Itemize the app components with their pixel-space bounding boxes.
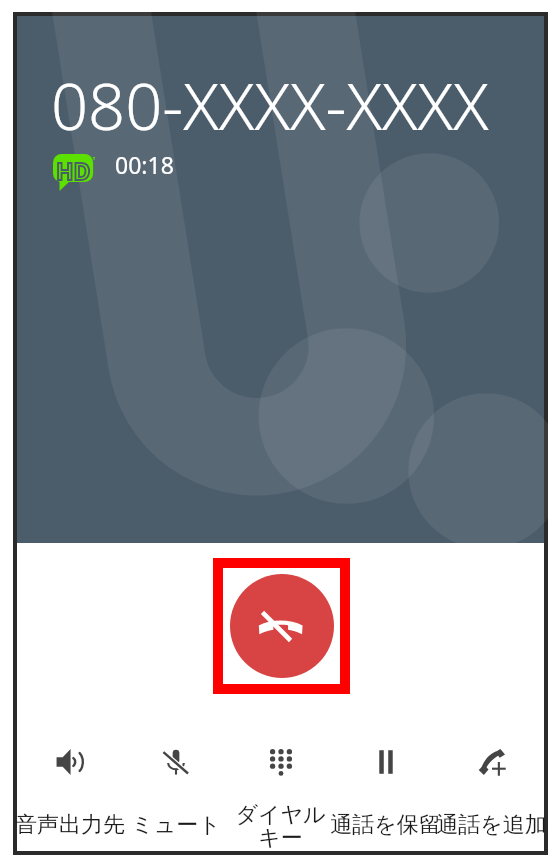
staticText: ダイヤル キー [235,801,326,849]
other: Dialpad [267,748,295,776]
staticText: 00:18 [115,149,174,180]
button[interactable]: Hold call [333,711,438,851]
other: Hold call [372,748,400,776]
button[interactable]: Dialpad [228,711,333,851]
staticText: 音声出力先 [15,811,125,839]
staticText: 通話を追加 [436,811,547,839]
other: Add call [478,748,506,776]
staticText: HD [56,155,91,186]
button[interactable]: Add call [439,711,544,851]
staticText: 080-XXXX-XXXX [51,61,489,150]
staticText: 通話を保留 [330,811,441,839]
staticText: ミュート [131,811,221,839]
other: Mute [162,748,190,776]
button[interactable]: Audio output [17,711,122,851]
button[interactable]: End call [230,574,334,678]
other: Audio output [56,748,84,776]
button[interactable]: Mute [123,711,228,851]
